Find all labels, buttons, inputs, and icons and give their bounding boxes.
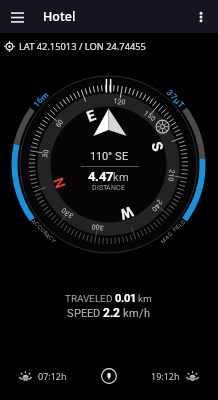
staticText: 07:12h <box>38 370 67 382</box>
button[interactable]: More options <box>187 3 215 31</box>
button[interactable]: 19:12h <box>133 352 218 400</box>
staticText: 19:12h <box>151 370 180 382</box>
staticText: Hotel <box>43 8 76 25</box>
button[interactable]: My location <box>85 352 133 400</box>
button[interactable]: 07:12h <box>0 352 85 400</box>
staticText: LAT 42.15013 / LON 24.74455 <box>19 40 146 53</box>
button[interactable]: Navigation menu <box>4 4 30 30</box>
